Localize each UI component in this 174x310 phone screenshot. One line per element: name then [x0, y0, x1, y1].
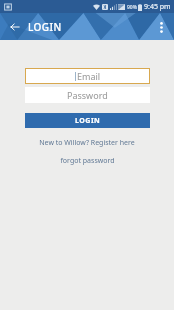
staticText: New to Willow? Register here	[39, 138, 135, 148]
button[interactable]: Back	[6, 18, 24, 36]
button[interactable]: More options	[152, 18, 170, 36]
button[interactable]: forgot password	[14, 156, 160, 166]
staticText: LOGIN	[75, 116, 101, 126]
staticText: Password	[67, 89, 108, 101]
staticText: forgot password	[60, 156, 115, 166]
button[interactable]: Password	[25, 87, 150, 103]
staticText: Email	[77, 70, 101, 82]
staticText: 9:45 pm	[144, 2, 171, 12]
button[interactable]: Email	[25, 68, 150, 84]
staticText: LOGIN	[28, 20, 62, 34]
button[interactable]: LOGIN	[25, 113, 150, 128]
staticText: 90%	[127, 4, 137, 11]
button[interactable]: New to Willow? Register here	[14, 138, 160, 148]
